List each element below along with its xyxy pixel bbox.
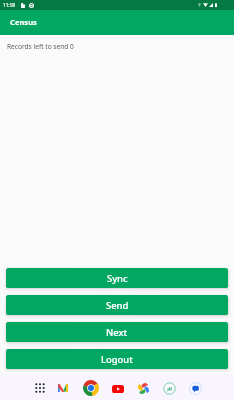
- button[interactable]: Chrome: [83, 380, 99, 396]
- staticText: Sync: [107, 272, 128, 285]
- staticText: Next: [106, 326, 128, 339]
- button[interactable]: Google Photos: [137, 382, 150, 395]
- staticText: Records left to send 0: [7, 42, 74, 51]
- button[interactable]: Messages: [189, 382, 202, 395]
- button[interactable]: Next: [6, 322, 228, 342]
- staticText: 11:18: [3, 2, 15, 8]
- button[interactable]: Gmail: [57, 382, 69, 394]
- button[interactable]: App shortcut: [163, 382, 176, 395]
- button[interactable]: All apps: [35, 383, 45, 393]
- button[interactable]: Sync: [6, 268, 228, 288]
- button[interactable]: Send: [6, 295, 228, 315]
- staticText: Census: [10, 17, 37, 27]
- staticText: Send: [106, 299, 129, 312]
- staticText: Logout: [101, 353, 133, 366]
- button[interactable]: Logout: [6, 349, 228, 369]
- button[interactable]: YouTube: [111, 382, 124, 395]
